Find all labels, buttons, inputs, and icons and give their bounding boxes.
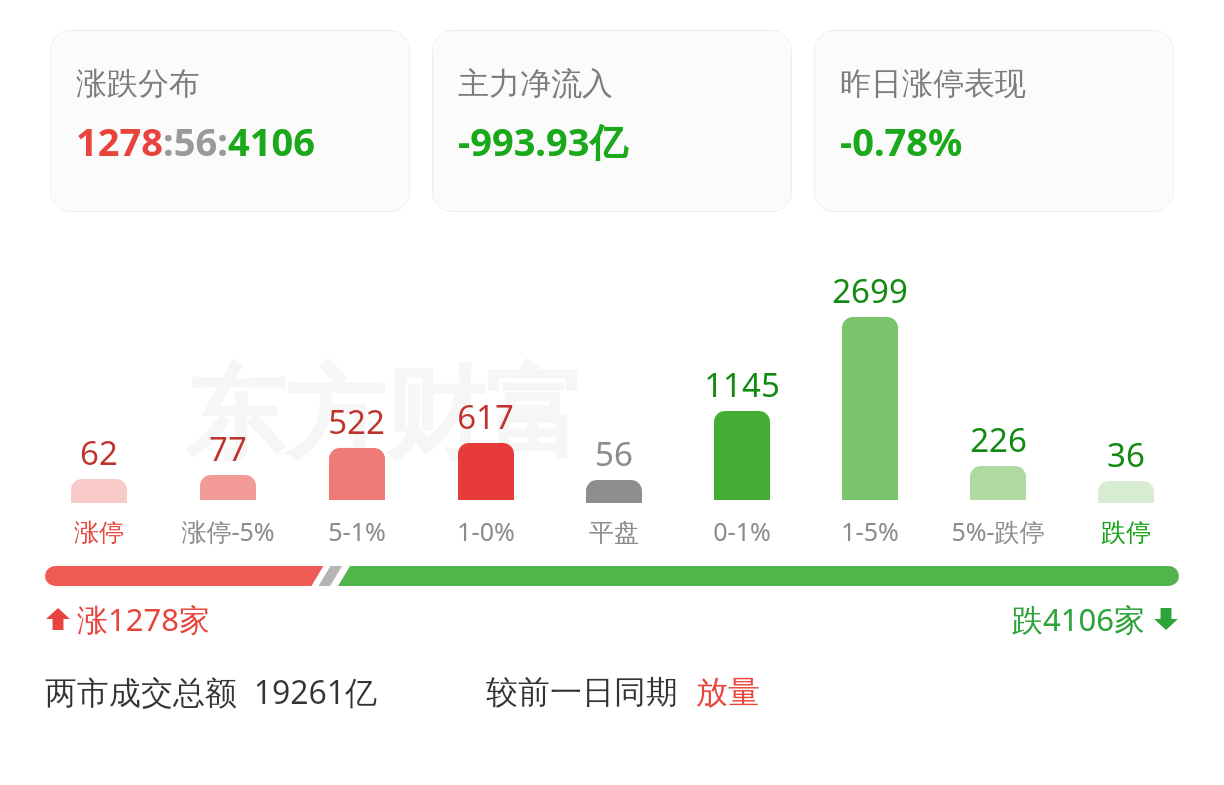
button[interactable]: 上涨: [45, 598, 210, 640]
other: 上涨: [45, 606, 71, 632]
staticText: 4106: [228, 115, 315, 167]
staticText: 36: [1107, 432, 1145, 477]
staticText: 62: [80, 430, 118, 475]
staticText: 56: [595, 431, 633, 476]
button[interactable]: 2699: [806, 268, 934, 548]
staticText: 1-5%: [841, 514, 899, 548]
button[interactable]: 36: [1062, 432, 1190, 548]
button[interactable]: 昨日涨停表现: [814, 30, 1174, 212]
staticText: 5%-跌停: [951, 514, 1045, 548]
staticText: 617: [457, 394, 514, 439]
staticText: 跌停: [1101, 517, 1151, 548]
button[interactable]: 56: [550, 431, 678, 548]
staticText: 平盘: [589, 517, 639, 548]
button[interactable]: 涨跌分布: [50, 30, 410, 212]
button[interactable]: 跌4106家: [1012, 598, 1179, 640]
staticText: 东方财富: [185, 352, 585, 478]
staticText: 226: [970, 417, 1027, 462]
button[interactable]: 617: [421, 394, 550, 548]
staticText: 1145: [704, 362, 780, 407]
button[interactable]: 226: [934, 417, 1062, 548]
staticText: 涨停-5%: [181, 514, 275, 548]
staticText: 昨日涨停表现: [840, 64, 1026, 103]
staticText: -0.78%: [840, 115, 963, 167]
staticText: 放量: [696, 672, 760, 712]
staticText: 1-0%: [457, 514, 515, 548]
staticText: 1278: [76, 115, 163, 167]
button[interactable]: 522: [292, 399, 421, 548]
staticText: 涨停: [74, 517, 124, 548]
staticText: 2699: [832, 268, 908, 313]
staticText: 0-1%: [713, 514, 771, 548]
staticText: 77: [209, 426, 247, 471]
button[interactable]: 涨跌比例条: [45, 566, 1179, 586]
button[interactable]: 放量: [696, 672, 760, 712]
staticText: 两市成交总额 19261亿: [45, 670, 378, 714]
staticText: 跌4106家: [1012, 598, 1145, 640]
button[interactable]: 62: [34, 430, 163, 548]
other: 下跌: [1153, 606, 1179, 632]
button[interactable]: 77: [163, 426, 292, 548]
staticText: 较前一日同期: [486, 672, 678, 712]
staticText: 涨1278家: [77, 598, 210, 640]
staticText: 522: [328, 399, 385, 444]
staticText: 涨跌分布: [76, 64, 200, 103]
staticText: -993.93亿: [458, 115, 628, 167]
staticText: :56:: [163, 115, 228, 167]
staticText: 5-1%: [328, 514, 386, 548]
staticText: 主力净流入: [458, 64, 613, 103]
button[interactable]: 主力净流入: [432, 30, 792, 212]
button[interactable]: 1145: [678, 362, 806, 548]
